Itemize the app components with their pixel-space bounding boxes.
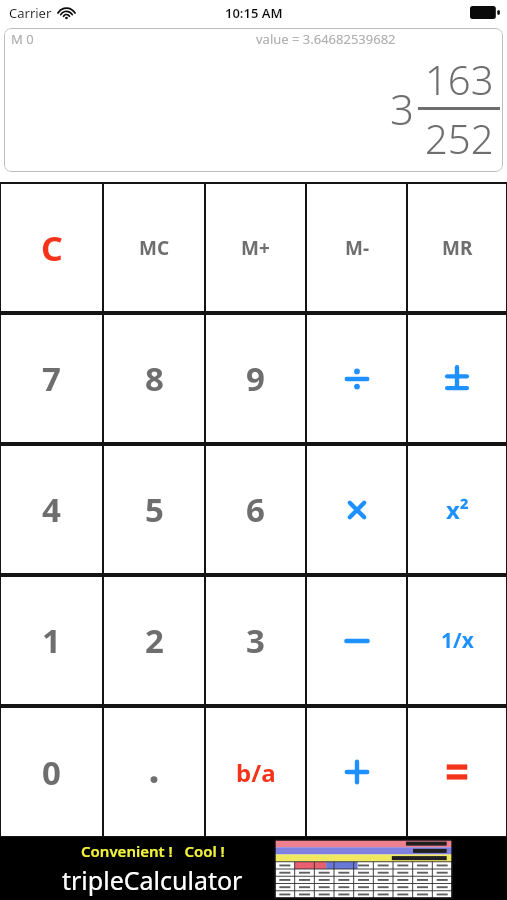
button[interactable]: 1/x (408, 577, 506, 704)
button[interactable]: Minus (307, 577, 406, 704)
button[interactable]: Plus (307, 708, 406, 836)
button[interactable]: 9 (206, 315, 305, 442)
other: Equals (438, 753, 476, 791)
button[interactable]: 0 (1, 708, 102, 836)
staticText: 1 (42, 618, 61, 663)
staticText: tripleCalculator (62, 863, 243, 897)
staticText: 1/x (441, 626, 474, 655)
staticText: Convenient ! Cool ! (81, 841, 225, 861)
other: Decimal point (135, 753, 173, 791)
staticText: Carrier (9, 4, 52, 22)
staticText: 0 (42, 750, 61, 795)
button[interactable]: M+ (206, 184, 305, 311)
other: Minus (338, 622, 376, 660)
button[interactable]: Plus minus (408, 315, 506, 442)
button[interactable]: 2 (104, 577, 204, 704)
staticText: 3 (390, 80, 414, 137)
button[interactable]: 7 (1, 315, 102, 442)
button[interactable]: Decimal point (104, 708, 204, 836)
button[interactable]: Multiply (307, 446, 406, 573)
staticText: 4 (42, 487, 61, 532)
staticText: 9 (246, 356, 265, 401)
staticText: 2 (145, 618, 164, 663)
button[interactable]: M 0 (4, 28, 503, 172)
staticText: b/a (236, 756, 276, 789)
staticText: 10:15 AM (225, 4, 283, 22)
staticText: 7 (42, 356, 61, 401)
staticText: MR (442, 235, 473, 261)
button[interactable]: x² (408, 446, 506, 573)
button[interactable]: 1 (1, 577, 102, 704)
button[interactable]: 8 (104, 315, 204, 442)
staticText: x² (446, 493, 469, 526)
staticText: 252 (425, 111, 494, 165)
staticText: value = 3.64682539682 (256, 30, 396, 48)
staticText: 8 (145, 356, 164, 401)
staticText: 163 (425, 52, 494, 106)
staticText: MC (139, 235, 170, 261)
button[interactable]: 5 (104, 446, 204, 573)
button[interactable]: M- (307, 184, 406, 311)
other: Calculator preview (275, 840, 452, 898)
button[interactable]: C (1, 184, 102, 311)
button[interactable]: 6 (206, 446, 305, 573)
staticText: M 0 (11, 30, 34, 48)
button[interactable]: MC (104, 184, 204, 311)
staticText: 5 (145, 487, 164, 532)
button[interactable]: 4 (1, 446, 102, 573)
staticText: M- (345, 235, 369, 261)
staticText: 6 (246, 487, 265, 532)
staticText: 3 (246, 618, 265, 663)
button[interactable]: b/a (206, 708, 305, 836)
button[interactable]: Divide (307, 315, 406, 442)
staticText: M+ (241, 235, 270, 261)
button[interactable]: MR (408, 184, 506, 311)
other: Multiply (338, 491, 376, 529)
other: Plus (338, 753, 376, 791)
button[interactable]: 3 (206, 577, 305, 704)
staticText: C (41, 225, 63, 271)
button[interactable]: Convenient ! Cool ! (0, 837, 507, 900)
other: Divide (338, 360, 376, 398)
other: Plus minus (438, 360, 476, 398)
button[interactable]: Equals (408, 708, 506, 836)
